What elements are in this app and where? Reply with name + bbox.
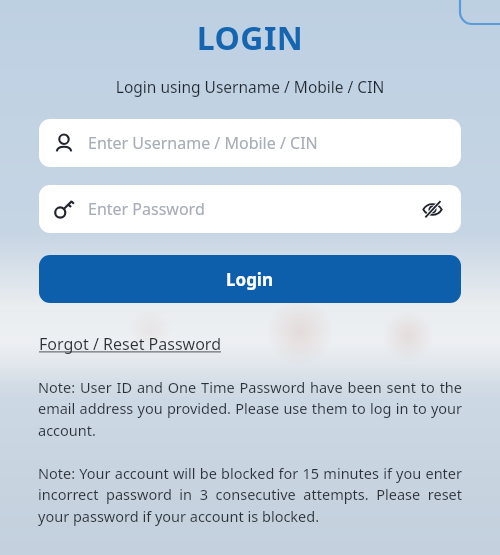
other: Password [53, 198, 75, 220]
other: Username [53, 132, 75, 154]
button[interactable]: Login [39, 255, 461, 303]
staticText: Enter Password [88, 198, 417, 220]
staticText: Login using Username / Mobile / CIN [0, 76, 500, 97]
staticText: Forgot / Reset Password [39, 333, 221, 355]
staticText: Note: User ID and One Time Password have… [38, 377, 462, 441]
button[interactable]: Username [39, 119, 461, 167]
staticText: Note: Your account will be blocked for 1… [38, 463, 462, 527]
staticText: Login [226, 268, 274, 291]
button[interactable]: Forgot / Reset Password [39, 333, 221, 355]
button[interactable]: Password [39, 185, 461, 233]
staticText: Enter Username / Mobile / CIN [88, 132, 318, 154]
staticText: LOGIN [0, 16, 500, 60]
button[interactable]: Show password [417, 194, 447, 224]
